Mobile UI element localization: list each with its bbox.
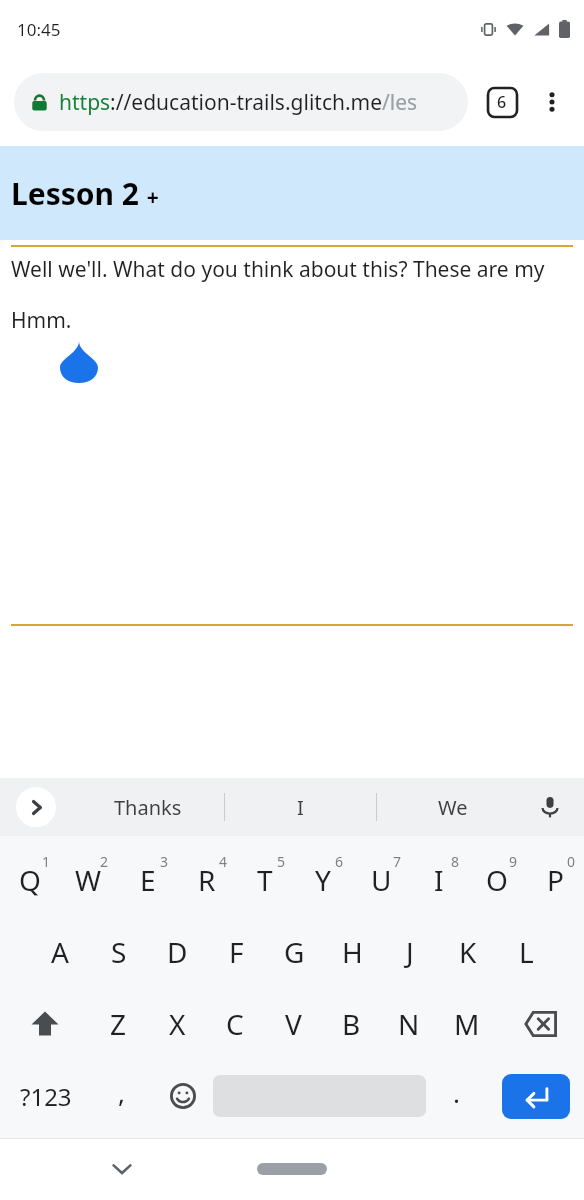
button[interactable]: L	[497, 916, 555, 988]
staticText: N	[398, 1005, 420, 1043]
button[interactable]: E	[118, 844, 177, 916]
button[interactable]: W	[59, 844, 118, 916]
staticText: Y	[315, 861, 331, 899]
button[interactable]: A	[30, 916, 89, 988]
staticText: https://education-trails.glitch.me/les	[59, 88, 418, 117]
staticText: Z	[110, 1005, 127, 1043]
staticText: U	[371, 861, 392, 899]
button[interactable]: S	[89, 916, 148, 988]
staticText: 10:45	[17, 18, 61, 41]
staticText: P	[547, 861, 564, 899]
button[interactable]: Comma	[91, 1060, 152, 1132]
staticText: O	[486, 861, 508, 899]
staticText: I	[434, 861, 444, 899]
button[interactable]: U	[352, 844, 410, 916]
button[interactable]: K	[439, 916, 497, 988]
button[interactable]: Enter	[502, 1074, 570, 1119]
button[interactable]: Q	[0, 844, 59, 916]
staticText: Hmm.	[11, 306, 72, 335]
staticText: 8	[451, 852, 460, 871]
button[interactable]: https://education-trails.glitch.me/les	[14, 73, 468, 131]
staticText: ,	[118, 1075, 125, 1110]
staticText: J	[406, 933, 414, 971]
staticText: L	[519, 933, 534, 971]
button[interactable]: M	[438, 988, 496, 1060]
staticText: M	[454, 1005, 480, 1043]
staticText: 2	[100, 852, 109, 871]
button[interactable]: Home	[257, 1163, 327, 1175]
button[interactable]: ?123	[0, 1060, 91, 1132]
button[interactable]: Expand toolbar	[16, 787, 56, 827]
staticText: X	[169, 1005, 186, 1043]
button[interactable]: Y	[294, 844, 352, 916]
staticText: 1	[42, 852, 51, 871]
button[interactable]: Backspace	[496, 988, 584, 1060]
staticText: S	[111, 933, 127, 971]
staticText: I	[297, 794, 304, 821]
button[interactable]: R	[177, 844, 236, 916]
button[interactable]: X	[148, 988, 206, 1060]
staticText: H	[342, 933, 363, 971]
button[interactable]: F	[207, 916, 265, 988]
staticText: K	[459, 933, 477, 971]
staticText: R	[198, 861, 216, 899]
staticText: 6	[497, 91, 507, 113]
button[interactable]: B	[322, 988, 380, 1060]
staticText: We	[438, 794, 468, 821]
staticText: Q	[19, 861, 41, 899]
button[interactable]: J	[381, 916, 439, 988]
staticText: A	[51, 933, 69, 971]
staticText: T	[257, 861, 273, 899]
button[interactable]: P	[526, 844, 584, 916]
staticText: B	[342, 1005, 361, 1043]
button[interactable]: V	[264, 988, 322, 1060]
staticText: C	[226, 1005, 244, 1043]
staticText: G	[284, 933, 305, 971]
staticText: ?123	[20, 1080, 72, 1113]
staticText: Thanks	[114, 794, 182, 821]
staticText: D	[167, 933, 188, 971]
button[interactable]: I	[225, 778, 376, 836]
staticText: F	[229, 933, 244, 971]
button[interactable]: We	[377, 778, 528, 836]
staticText: Lesson 2 +	[11, 173, 159, 214]
button[interactable]: Emoji	[152, 1060, 213, 1132]
staticText: 6	[335, 852, 344, 871]
button[interactable]: Shift	[0, 988, 89, 1060]
staticText: W	[75, 861, 102, 899]
button[interactable]: N	[380, 988, 438, 1060]
staticText: V	[285, 1005, 302, 1043]
staticText: 9	[509, 852, 518, 871]
button[interactable]: O	[468, 844, 526, 916]
staticText: E	[140, 861, 156, 899]
staticText: 7	[393, 852, 402, 871]
button[interactable]: T	[236, 844, 294, 916]
staticText: 0	[567, 852, 576, 871]
button[interactable]: D	[148, 916, 207, 988]
staticText: 5	[277, 852, 286, 871]
button[interactable]: H	[323, 916, 381, 988]
button[interactable]: Tabs, 6 open	[478, 78, 526, 126]
button[interactable]: C	[206, 988, 264, 1060]
button[interactable]: Z	[89, 988, 148, 1060]
staticText: 4	[219, 852, 228, 871]
staticText: Well we'll. What do you think about this…	[11, 255, 584, 284]
button[interactable]: Thanks	[72, 778, 224, 836]
button[interactable]: Period	[426, 1060, 487, 1132]
button[interactable]: G	[265, 916, 323, 988]
button[interactable]: I	[410, 844, 468, 916]
staticText: 3	[160, 852, 169, 871]
button[interactable]: Hide keyboard	[100, 1147, 144, 1191]
button[interactable]: More options	[528, 78, 576, 126]
staticText: .	[453, 1075, 460, 1110]
button[interactable]: Voice input	[528, 785, 572, 829]
